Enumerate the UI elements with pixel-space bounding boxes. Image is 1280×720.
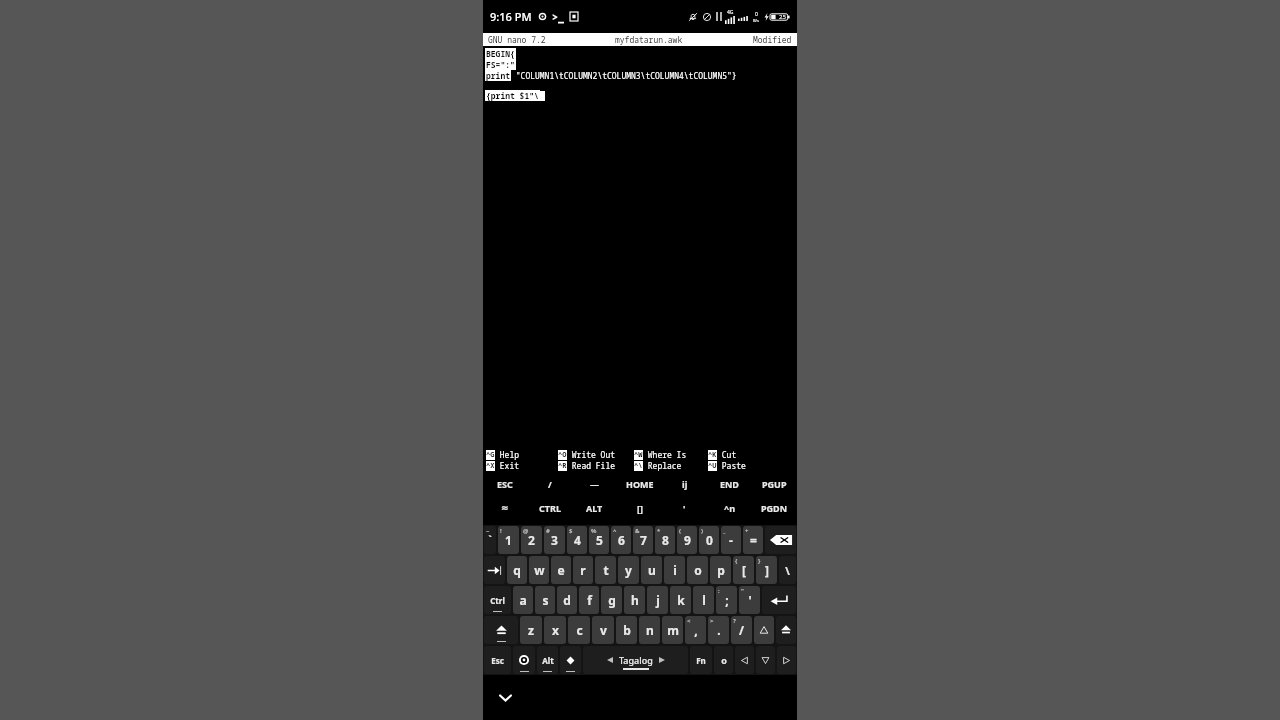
button[interactable]: $	[567, 526, 587, 554]
button[interactable]: #	[544, 526, 565, 554]
staticText: ^\	[634, 461, 643, 471]
staticText: 0	[706, 532, 713, 548]
button[interactable]: c	[568, 616, 590, 644]
button[interactable]: END	[707, 477, 752, 491]
button[interactable]: ALT	[572, 501, 617, 515]
staticText: ^R	[558, 461, 567, 471]
button[interactable]: ij	[662, 477, 707, 491]
staticText: HOME	[626, 478, 654, 490]
button[interactable]: y	[618, 556, 639, 584]
button[interactable]: Settings	[513, 646, 535, 674]
button[interactable]: )	[699, 526, 719, 554]
button[interactable]: '	[662, 501, 707, 515]
button[interactable]: j	[647, 586, 668, 614]
button[interactable]: f	[579, 586, 599, 614]
staticText: 9	[684, 532, 691, 548]
button[interactable]: Tab	[484, 556, 505, 584]
button[interactable]: u	[641, 556, 662, 584]
staticText: ^	[613, 527, 617, 535]
button[interactable]: Shift	[776, 616, 796, 644]
button[interactable]: —	[572, 477, 617, 491]
staticText: t	[603, 562, 609, 578]
staticText: /	[739, 622, 744, 638]
button[interactable]: Tagalog	[583, 646, 688, 674]
staticText: BEGIN{	[486, 48, 515, 59]
button[interactable]: a	[513, 586, 533, 614]
button[interactable]: q	[507, 556, 527, 584]
button[interactable]: t	[595, 556, 616, 584]
staticText: l	[702, 592, 706, 608]
staticText: -	[729, 532, 733, 548]
button[interactable]: ^	[611, 526, 631, 554]
button[interactable]: r	[573, 556, 593, 584]
button[interactable]: PGUP	[752, 477, 797, 491]
button[interactable]: ^n	[707, 501, 752, 515]
button[interactable]: o	[714, 646, 733, 674]
button[interactable]: Fn	[690, 646, 712, 674]
button[interactable]: Backspace	[765, 526, 796, 554]
button[interactable]: ?	[731, 616, 752, 644]
button[interactable]: >	[708, 616, 729, 644]
staticText: '	[748, 592, 752, 608]
button[interactable]: o	[687, 556, 708, 584]
button[interactable]: }	[756, 556, 777, 584]
button[interactable]: _	[721, 526, 741, 554]
staticText: Alt	[542, 655, 554, 666]
button[interactable]: k	[670, 586, 691, 614]
button[interactable]: d	[557, 586, 577, 614]
staticText: END	[720, 478, 739, 490]
button[interactable]: ~	[484, 526, 496, 554]
button[interactable]: Shift	[484, 616, 518, 644]
staticText: CTRL	[539, 502, 561, 514]
button[interactable]: s	[535, 586, 555, 614]
button[interactable]: m	[662, 616, 683, 644]
button[interactable]: Ctrl	[484, 586, 511, 614]
button[interactable]: (	[677, 526, 697, 554]
staticText: Fn	[696, 655, 706, 666]
button[interactable]: b	[616, 616, 637, 644]
button[interactable]: :	[716, 586, 737, 614]
button[interactable]: *	[655, 526, 675, 554]
button[interactable]: Left	[735, 646, 754, 674]
button[interactable]: p	[710, 556, 731, 584]
button[interactable]: CTRL	[527, 501, 572, 515]
button[interactable]: Hide keyboard	[492, 685, 518, 711]
staticText: u	[648, 562, 656, 578]
button[interactable]: +	[743, 526, 763, 554]
button[interactable]: Up	[754, 616, 774, 644]
staticText: )	[701, 527, 704, 535]
staticText: '	[683, 502, 686, 514]
staticText: a	[519, 592, 527, 608]
button[interactable]: HOME	[617, 477, 662, 491]
button[interactable]: {	[733, 556, 754, 584]
button[interactable]: %	[589, 526, 609, 554]
button[interactable]: g	[601, 586, 622, 614]
button[interactable]: \	[779, 556, 796, 584]
button[interactable]: ≈	[483, 501, 527, 515]
button[interactable]: Right	[777, 646, 796, 674]
button[interactable]: i	[664, 556, 685, 584]
button[interactable]: z	[520, 616, 542, 644]
button[interactable]: n	[639, 616, 660, 644]
button[interactable]: /	[527, 477, 572, 491]
button[interactable]: []	[617, 501, 662, 515]
button[interactable]: Down	[756, 646, 775, 674]
button[interactable]: x	[544, 616, 566, 644]
button[interactable]: e	[551, 556, 571, 584]
button[interactable]: h	[624, 586, 645, 614]
button[interactable]: ESC	[483, 477, 527, 491]
button[interactable]: Enter	[762, 586, 796, 614]
button[interactable]: PGDN	[752, 501, 797, 515]
button[interactable]: v	[592, 616, 614, 644]
button[interactable]: Esc	[484, 646, 511, 674]
staticText: Replace	[643, 460, 682, 471]
button[interactable]: <	[685, 616, 706, 644]
button[interactable]: !	[498, 526, 519, 554]
button[interactable]: Alt	[537, 646, 558, 674]
button[interactable]: w	[529, 556, 549, 584]
button[interactable]: "	[739, 586, 760, 614]
button[interactable]: &	[633, 526, 653, 554]
button[interactable]: @	[521, 526, 542, 554]
button[interactable]: Symbols	[560, 646, 581, 674]
button[interactable]: l	[693, 586, 714, 614]
